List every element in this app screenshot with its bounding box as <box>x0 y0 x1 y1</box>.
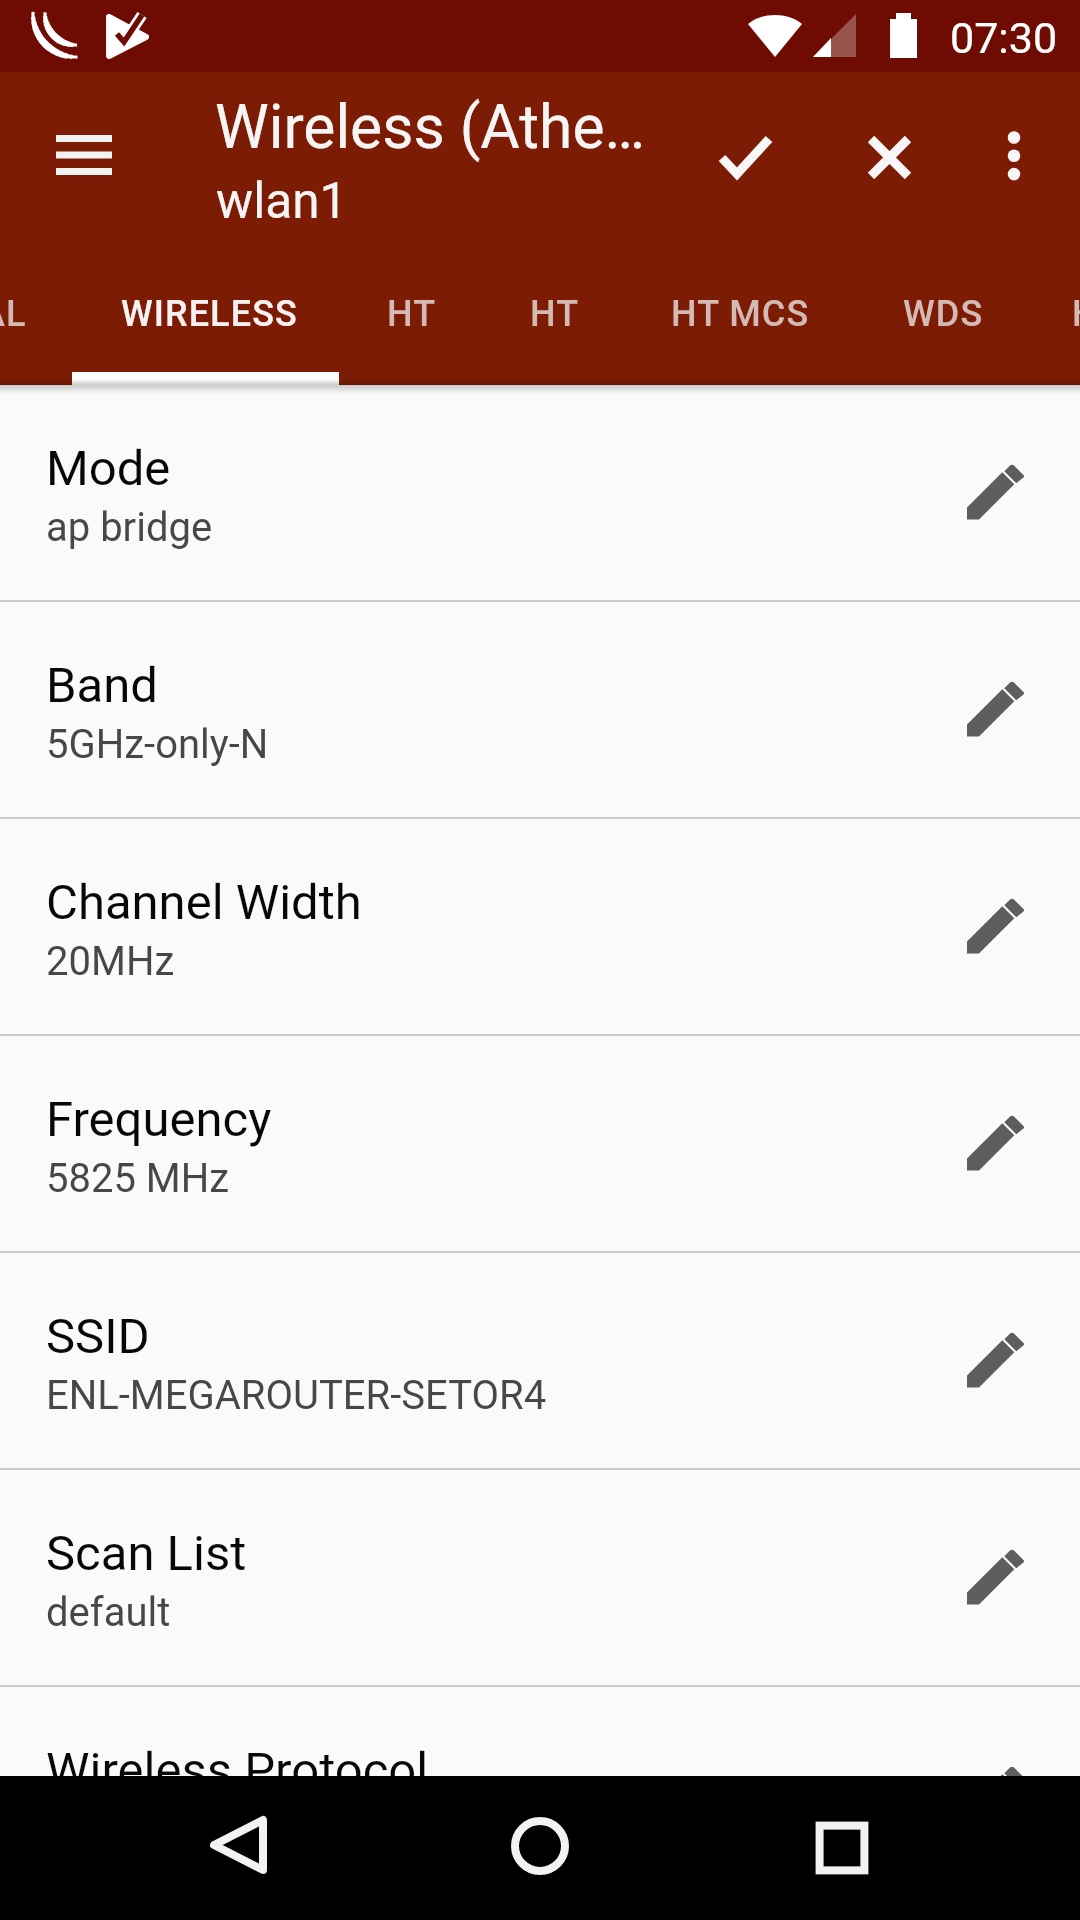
button[interactable]: Edit <box>967 682 1024 739</box>
staticText: default <box>46 1589 171 1636</box>
button[interactable]: Wireless Protocol <box>0 1687 1080 1904</box>
staticText: 20MHz <box>46 938 175 985</box>
button[interactable]: Cancel <box>840 105 936 201</box>
button[interactable]: Recent apps <box>810 1816 874 1880</box>
button[interactable]: SSID <box>0 1253 1080 1470</box>
button[interactable]: Edit <box>967 1333 1024 1390</box>
staticText: Wireless (Athe… <box>215 92 645 163</box>
staticText: Frequency <box>46 1091 272 1148</box>
button[interactable]: Back <box>209 1814 273 1878</box>
button[interactable]: Band <box>0 602 1080 819</box>
button[interactable]: WDS <box>854 265 1030 385</box>
button[interactable]: Scan List <box>0 1470 1080 1687</box>
button[interactable]: Edit <box>967 1116 1024 1173</box>
button[interactable]: AL <box>0 265 72 385</box>
staticText: WIRELESS <box>121 293 298 335</box>
staticText: WDS <box>903 293 984 335</box>
button[interactable]: Home <box>508 1814 572 1878</box>
staticText: 5825 MHz <box>46 1155 230 1202</box>
button[interactable]: Frequency <box>0 1036 1080 1253</box>
staticText: HT MCS <box>671 293 810 335</box>
staticText: ap bridge <box>46 504 213 551</box>
button[interactable]: Edit <box>967 1767 1024 1824</box>
button[interactable]: More options <box>966 105 1062 201</box>
staticText: Scan List <box>46 1525 247 1582</box>
staticText: Band <box>46 657 158 714</box>
staticText: wlan1 <box>216 172 348 230</box>
button[interactable]: HT <box>339 265 482 385</box>
button[interactable]: Channel Width <box>0 819 1080 1036</box>
button[interactable]: HT <box>482 265 624 385</box>
button[interactable]: H <box>1030 265 1080 385</box>
button[interactable]: Edit <box>967 1550 1024 1607</box>
staticText: AL <box>0 293 27 335</box>
staticText: HT <box>387 293 437 335</box>
staticText: 5GHz-only-N <box>46 721 269 768</box>
button[interactable]: WIRELESS <box>72 265 339 385</box>
staticText: SSID <box>46 1308 150 1365</box>
button[interactable]: Navigation menu <box>32 102 136 206</box>
button[interactable]: Apply <box>697 105 793 201</box>
staticText: H <box>1072 293 1080 335</box>
staticText: Wireless Protocol <box>46 1742 429 1799</box>
staticText: Mode <box>46 440 171 497</box>
staticText: Channel Width <box>46 874 362 931</box>
button[interactable]: Edit <box>967 899 1024 956</box>
button[interactable]: HT MCS <box>624 265 854 385</box>
button[interactable]: Edit <box>967 465 1024 522</box>
staticText: 07:30 <box>950 13 1058 63</box>
staticText: ENL-MEGAROUTER-SETOR4 <box>46 1372 547 1419</box>
staticText: HT <box>530 293 580 335</box>
button[interactable]: Mode <box>0 385 1080 602</box>
